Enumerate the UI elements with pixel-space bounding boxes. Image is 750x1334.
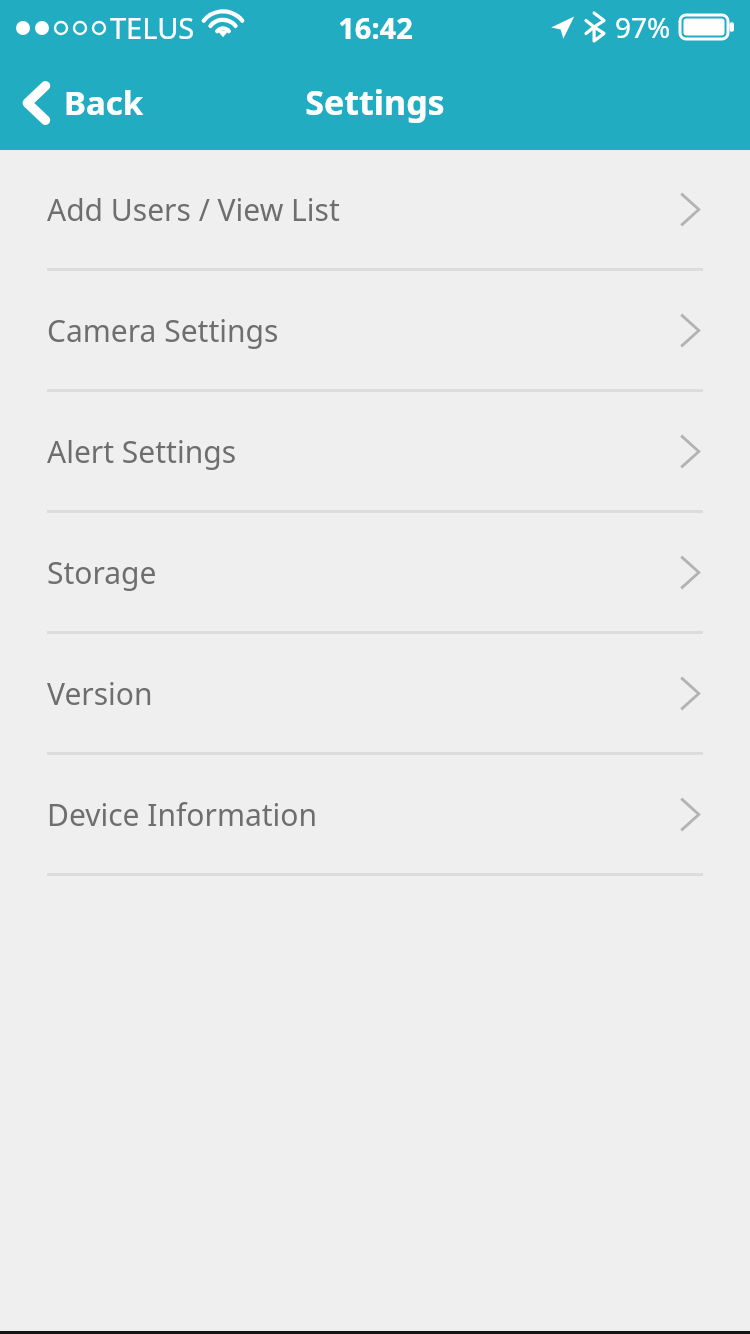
staticText: 16:42 <box>338 8 413 47</box>
button[interactable]: Version <box>0 634 750 755</box>
staticText: Storage <box>47 552 157 593</box>
button[interactable]: Storage <box>0 513 750 634</box>
staticText: Version <box>47 673 153 714</box>
staticText: Back <box>64 80 144 125</box>
button[interactable]: Device Information <box>0 755 750 876</box>
button[interactable]: Add Users / View List <box>0 150 750 271</box>
button[interactable]: Camera Settings <box>0 271 750 392</box>
staticText: Device Information <box>47 794 318 835</box>
staticText: Alert Settings <box>47 431 236 472</box>
button[interactable]: Back <box>0 72 162 133</box>
staticText: 97% <box>615 8 671 46</box>
staticText: Add Users / View List <box>47 189 340 230</box>
button[interactable]: Alert Settings <box>0 392 750 513</box>
staticText: TELUS <box>110 8 195 47</box>
staticText: Settings <box>305 79 445 125</box>
staticText: Camera Settings <box>47 310 279 351</box>
